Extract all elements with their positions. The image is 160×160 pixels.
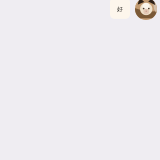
button[interactable]: Sender profile photo xyxy=(135,0,157,20)
button[interactable]: 好 xyxy=(110,0,130,19)
staticText: 好 xyxy=(117,6,123,13)
